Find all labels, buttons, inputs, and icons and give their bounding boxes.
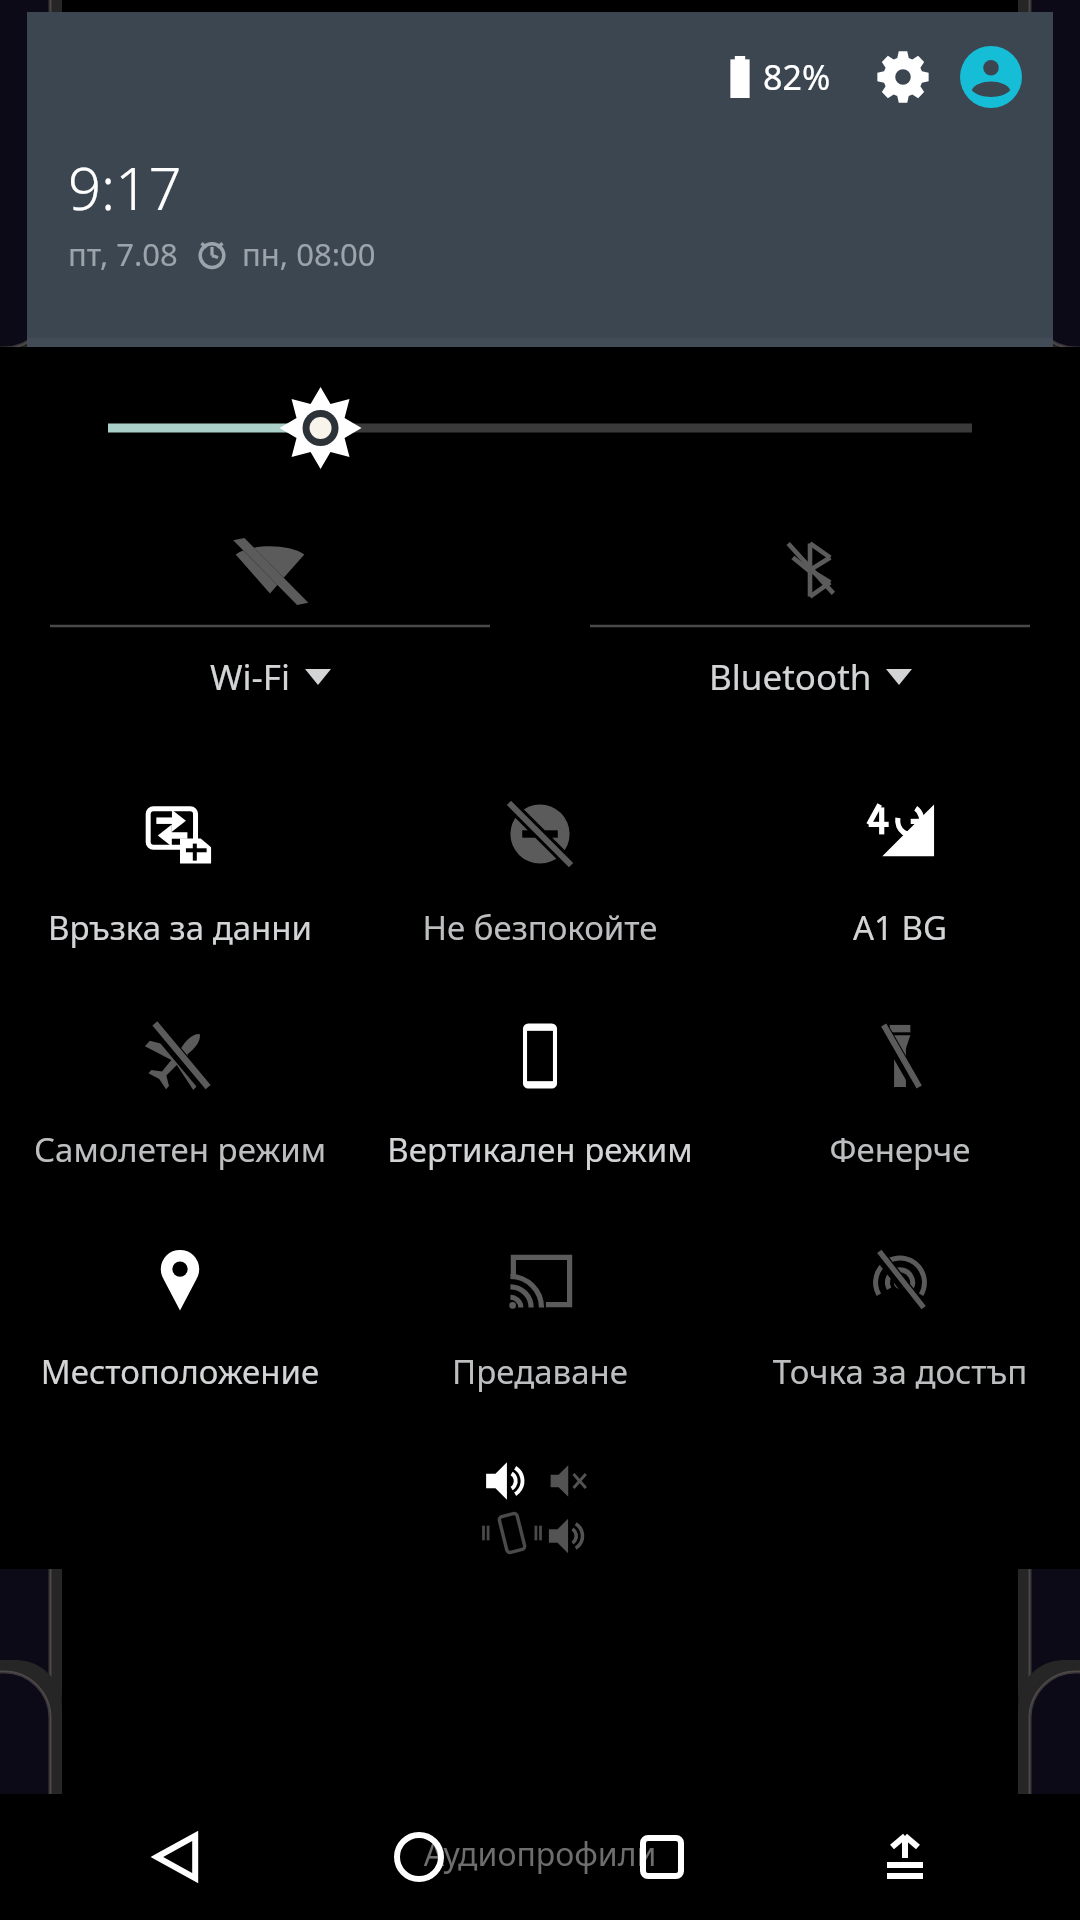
button[interactable]: Battery 82 percent [721, 54, 837, 100]
staticText: Предаване [366, 1349, 714, 1394]
button[interactable]: Не безпокойте [360, 777, 720, 950]
button[interactable]: Home [373, 1811, 465, 1903]
button[interactable]: A1 BG [720, 777, 1080, 950]
button[interactable]: Фенерче [720, 999, 1080, 1172]
staticText: Местоположение [6, 1349, 354, 1394]
button[interactable]: Точка за достъп [720, 1221, 1080, 1394]
staticText: Връзка за данни [6, 905, 354, 950]
button[interactable]: Expand [859, 1811, 951, 1903]
button[interactable]: Bluetooth [540, 517, 1080, 701]
staticText: пн, 08:00 [242, 233, 376, 275]
staticText: Wi-Fi [210, 653, 291, 701]
button[interactable]: Recent apps [616, 1811, 708, 1903]
button[interactable]: Предаване [360, 1221, 720, 1394]
other: Battery 82 percent [727, 56, 753, 98]
staticText: пт, 7.08 [68, 233, 178, 275]
button[interactable]: Wi-Fi [0, 517, 540, 701]
button[interactable]: пт, 7.08 [68, 233, 376, 275]
staticText: Фенерче [726, 1127, 1074, 1172]
staticText: Аудиопрофили [0, 1832, 1080, 1876]
button[interactable]: Местоположение [0, 1221, 360, 1394]
button[interactable]: Back [130, 1811, 222, 1903]
staticText: Самолетен режим [6, 1127, 354, 1172]
button[interactable]: User account [957, 43, 1025, 111]
staticText: Не безпокойте [366, 905, 714, 950]
button[interactable]: Brightness [0, 393, 1080, 463]
button[interactable]: Самолетен режим [0, 999, 360, 1172]
staticText: 82% [763, 54, 831, 100]
button[interactable]: Връзка за данни [0, 777, 360, 950]
staticText: 9:17 [68, 148, 182, 227]
button[interactable]: Settings [871, 45, 935, 109]
staticText: A1 BG [726, 905, 1074, 950]
button[interactable]: Вертикален режим [360, 999, 720, 1172]
staticText: Вертикален режим [366, 1127, 714, 1172]
staticText: Точка за достъп [726, 1349, 1074, 1394]
button[interactable]: Audio profiles [0, 1449, 1080, 1569]
staticText: Bluetooth [709, 653, 872, 701]
